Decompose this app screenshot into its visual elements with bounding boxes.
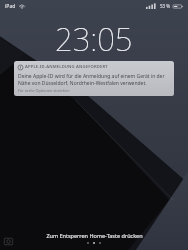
staticText: Für mehr Optionen streichen (18, 88, 70, 93)
button[interactable]: APPLE-ID-ANMELDUNG ANGEFORDERT (14, 61, 174, 96)
staticText: APPLE-ID-ANMELDUNG ANGEFORDERT (25, 64, 108, 70)
button[interactable]: Kamera (3, 236, 14, 247)
staticText: 23:05 (55, 18, 133, 60)
staticText: 53 % (160, 3, 171, 9)
staticText: Zum Entsperren Home-Taste drücken (46, 232, 143, 239)
staticText: Deine Apple-ID wird für die Anmeldung au… (18, 73, 170, 86)
staticText: iPad (5, 3, 16, 10)
staticText: Montag, 13. März (67, 61, 121, 70)
